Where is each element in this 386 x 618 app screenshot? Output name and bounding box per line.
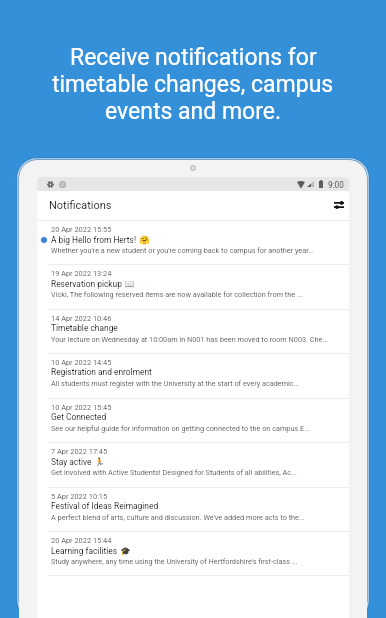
staticText: 20 Apr 2022 15:55	[51, 225, 112, 234]
staticText: All students must register with the Univ…	[51, 379, 300, 388]
staticText: A perfect blend of arts, culture and dis…	[51, 513, 305, 522]
button[interactable]: 10 Apr 2022 15:45	[37, 398, 349, 442]
button[interactable]: 20 Apr 2022 15:55	[37, 220, 349, 264]
staticText: 7 Apr 2022 17:45	[51, 447, 108, 456]
staticText: 19 Apr 2022 13:24	[51, 269, 112, 278]
staticText: Get Connected	[51, 412, 107, 422]
button[interactable]: Filter notifications	[328, 194, 349, 216]
staticText: Notifications	[49, 199, 112, 212]
staticText: 🎓	[118, 545, 131, 556]
staticText: 10 Apr 2022 14:45	[51, 358, 112, 367]
staticText: Timetable change	[51, 323, 118, 333]
button[interactable]: 5 Apr 2022 10:15	[37, 487, 349, 531]
staticText: A big Hello from Herts!	[51, 235, 137, 245]
staticText: 20 Apr 2022 15:44	[51, 536, 112, 545]
staticText: timetable changes, campus	[52, 71, 334, 98]
button[interactable]: 10 Apr 2022 14:45	[37, 353, 349, 397]
staticText: Whether you're a new student or you're c…	[51, 246, 315, 255]
staticText: 5 Apr 2022 10:15	[51, 492, 108, 501]
button[interactable]: 14 Apr 2022 10:46	[37, 309, 349, 353]
staticText: Study anywhere, any time using the Unive…	[51, 557, 298, 566]
staticText: events and more.	[105, 98, 282, 125]
staticText: 📖	[122, 278, 135, 289]
staticText: Receive notifications for	[70, 44, 317, 71]
staticText: 9:00	[328, 180, 344, 190]
staticText: Stay active	[51, 457, 92, 467]
staticText: Your lecture on Wednesday at 10:00am in …	[51, 335, 329, 344]
staticText: Reservation pickup	[51, 279, 122, 289]
button[interactable]: 20 Apr 2022 15:44	[37, 531, 349, 575]
staticText: 14 Apr 2022 10:46	[51, 314, 112, 323]
staticText: Vicki, The following reserved items are …	[51, 290, 303, 299]
staticText: Festival of Ideas Reimagined	[51, 501, 159, 511]
staticText: Get involved with Active Students! Desig…	[51, 468, 297, 477]
staticText: Registration and enrolment	[51, 367, 152, 377]
staticText: 🏃	[92, 456, 105, 467]
button[interactable]: 19 Apr 2022 13:24	[37, 264, 349, 308]
staticText: Learning facilities	[51, 546, 118, 556]
staticText: 10 Apr 2022 15:45	[51, 403, 112, 412]
button[interactable]: 7 Apr 2022 17:45	[37, 442, 349, 486]
staticText: 🤗	[137, 234, 150, 245]
staticText: See our helpful guide for information on…	[51, 424, 310, 433]
